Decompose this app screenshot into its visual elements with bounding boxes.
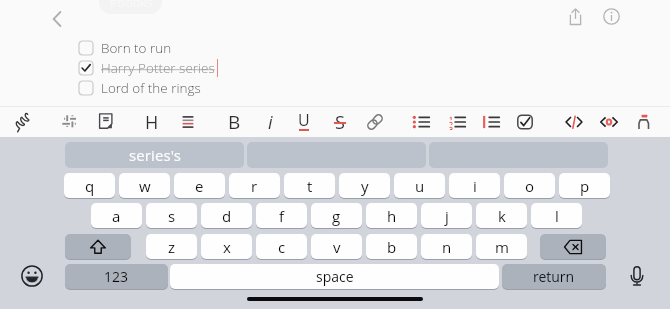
button[interactable]: n <box>421 234 472 259</box>
staticText: U <box>298 109 310 131</box>
button[interactable]: Italic <box>256 108 284 136</box>
button[interactable]: Backspace <box>540 234 606 259</box>
staticText: a <box>112 206 121 226</box>
button[interactable]: j <box>421 203 472 228</box>
staticText: l <box>555 206 559 226</box>
staticText: 1 <box>449 115 454 120</box>
staticText: x <box>223 237 231 257</box>
staticText: g <box>332 206 341 226</box>
staticText: Harry Potter series <box>101 59 215 77</box>
staticText: space <box>316 267 354 286</box>
staticText: t <box>307 176 313 196</box>
button[interactable]: z <box>146 234 197 259</box>
button[interactable]: u <box>394 173 445 198</box>
button[interactable]: c <box>256 234 307 259</box>
staticText: y <box>361 176 369 196</box>
button[interactable]: Bullet list <box>407 108 435 136</box>
staticText: f <box>279 206 285 226</box>
button[interactable]: Inline code <box>595 108 623 136</box>
staticText: series's <box>129 145 181 165</box>
button[interactable]: q <box>64 173 115 198</box>
button[interactable]: l <box>531 203 582 228</box>
staticText: 123 <box>104 267 129 286</box>
staticText: h <box>387 206 397 226</box>
button[interactable]: Share <box>562 3 588 29</box>
staticText: S <box>335 110 345 135</box>
staticText: q <box>85 176 95 196</box>
staticText: s <box>168 206 176 226</box>
button[interactable]: Heading <box>138 108 166 136</box>
staticText: m <box>495 237 509 257</box>
button[interactable]: b <box>366 234 417 259</box>
button[interactable]: Dictation <box>627 266 647 286</box>
staticText: H <box>145 110 159 135</box>
staticText: r <box>251 176 258 196</box>
button[interactable]: return <box>502 264 606 289</box>
staticText: i <box>268 110 273 135</box>
button[interactable]: space <box>170 264 499 289</box>
staticText: k <box>498 206 506 226</box>
button[interactable]: Born to run <box>79 38 172 58</box>
button[interactable]: m <box>476 234 527 259</box>
button[interactable]: Draw <box>8 108 36 136</box>
button[interactable]: series's <box>65 142 244 168</box>
button[interactable]: a <box>91 203 142 228</box>
button[interactable]: 123 <box>65 264 168 289</box>
button[interactable]: i <box>449 173 500 198</box>
button[interactable]: f <box>256 203 307 228</box>
button[interactable]: p <box>559 173 610 198</box>
staticText: 2 <box>449 120 454 125</box>
button[interactable]: Block quote <box>477 108 505 136</box>
button[interactable]: Shift <box>65 234 131 259</box>
button[interactable]: Checklist <box>511 108 539 136</box>
staticText: return <box>533 267 575 286</box>
button[interactable]: y <box>339 173 390 198</box>
staticText: Lord of the rings <box>101 79 201 97</box>
staticText: 3 <box>449 125 454 130</box>
button[interactable]: e <box>174 173 225 198</box>
button[interactable]: Underline <box>290 108 318 136</box>
staticText: Born to run <box>101 39 172 57</box>
button[interactable]: Strikethrough <box>326 108 354 136</box>
button[interactable]: Info <box>598 3 624 29</box>
button[interactable]: Table <box>55 108 83 136</box>
button[interactable]: v <box>311 234 362 259</box>
button[interactable]: o <box>504 173 555 198</box>
button[interactable]: Lord of the rings <box>79 78 201 98</box>
button[interactable]: Note <box>92 108 120 136</box>
button[interactable]: Harry Potter series <box>79 58 216 78</box>
staticText: n <box>442 237 452 257</box>
staticText: o <box>525 176 535 196</box>
button[interactable]: t <box>284 173 335 198</box>
button[interactable]: Code block <box>560 108 588 136</box>
staticText: b <box>387 237 397 257</box>
staticText: c <box>278 237 286 257</box>
staticText: e <box>195 176 204 196</box>
staticText: B <box>228 109 241 135</box>
button[interactable]: x <box>201 234 252 259</box>
button[interactable]: h <box>366 203 417 228</box>
button[interactable]: r <box>229 173 280 198</box>
button[interactable]: Highlight <box>630 108 658 136</box>
button[interactable]: g <box>311 203 362 228</box>
button[interactable]: s <box>146 203 197 228</box>
staticText: j <box>445 206 449 226</box>
staticText: u <box>415 176 425 196</box>
button[interactable]: d <box>201 203 252 228</box>
button[interactable]: k <box>476 203 527 228</box>
button[interactable]: Numbered list <box>443 108 471 136</box>
staticText: i <box>473 176 477 196</box>
button[interactable]: Paragraph style <box>174 108 202 136</box>
button[interactable]: Back <box>43 5 71 33</box>
button[interactable]: Emoji keyboard <box>21 265 43 287</box>
staticText: z <box>168 237 176 257</box>
staticText: w <box>139 176 151 196</box>
button[interactable]: w <box>119 173 170 198</box>
button[interactable]: Bold <box>220 108 248 136</box>
staticText: v <box>333 237 341 257</box>
button[interactable]: Link <box>361 108 389 136</box>
